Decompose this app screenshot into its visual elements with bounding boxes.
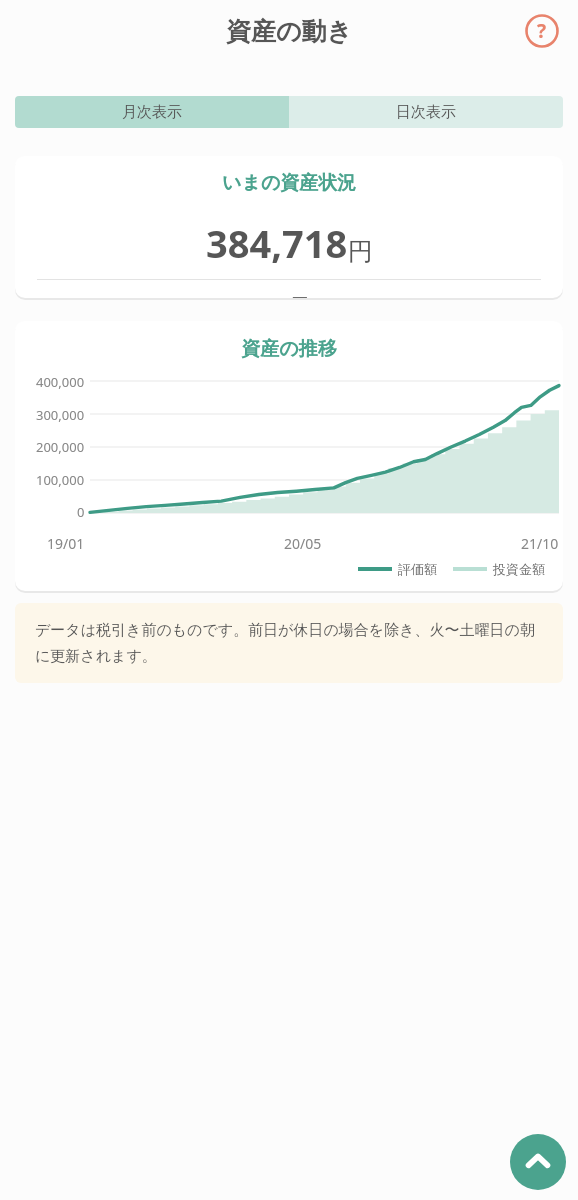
staticText: 月次表示 xyxy=(122,103,182,122)
staticText: 400,000 xyxy=(36,373,85,391)
staticText: 0 xyxy=(77,503,85,521)
button[interactable]: 月次表示 xyxy=(15,96,289,128)
staticText: 評価額 xyxy=(398,561,437,577)
staticText: 100,000 xyxy=(36,471,85,489)
staticText: 投資金額 xyxy=(493,561,545,577)
staticText: 資産の動き xyxy=(226,16,353,47)
staticText: 資産の推移 xyxy=(15,337,563,361)
button[interactable]: Help xyxy=(522,11,562,51)
button[interactable]: 日次表示 xyxy=(289,96,563,128)
staticText: データは税引き前のものです。前日が休日の場合を除き、火〜土曜日の朝に更新されます… xyxy=(35,621,543,666)
button[interactable]: データは税引き前のものです。前日が休日の場合を除き、火〜土曜日の朝に更新されます… xyxy=(15,603,563,683)
button[interactable]: いまの資産状況 xyxy=(15,156,563,298)
staticText: いまの資産状況 xyxy=(222,171,357,195)
staticText: 75,567 円 UP!! xyxy=(230,292,348,298)
button[interactable]: Scroll to top xyxy=(510,1134,566,1190)
staticText: ? xyxy=(537,18,547,44)
staticText: 20/05 xyxy=(284,534,322,553)
staticText: 円 xyxy=(348,236,373,267)
staticText: 19/01 xyxy=(47,534,85,553)
staticText: 21/10 xyxy=(521,534,559,553)
staticText: 200,000 xyxy=(36,438,85,456)
staticText: 384,718 xyxy=(206,217,348,269)
staticText: 300,000 xyxy=(36,406,85,424)
staticText: 日次表示 xyxy=(396,103,456,122)
